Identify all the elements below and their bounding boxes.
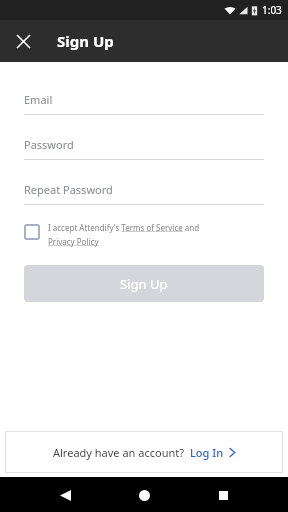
button[interactable]: Close <box>10 28 36 54</box>
staticText: Privacy Policy <box>48 236 99 247</box>
staticText: I accept Attendify's Terms of Service an… <box>48 222 200 233</box>
staticText: Sign Up <box>120 275 168 293</box>
other: Accept terms checkbox <box>24 224 40 240</box>
button[interactable]: Email <box>24 92 264 115</box>
staticText: Password <box>24 137 74 152</box>
button[interactable]: Password <box>24 137 264 160</box>
staticText: Email <box>24 92 53 107</box>
staticText: Log In <box>190 445 224 460</box>
staticText: Already have an account? <box>53 445 184 460</box>
button[interactable]: Already have an account? <box>5 431 283 473</box>
staticText: 1:03 <box>262 3 282 17</box>
button[interactable]: Home <box>132 483 156 507</box>
button[interactable]: Accept terms checkbox <box>24 222 264 247</box>
button[interactable]: Back <box>53 483 77 507</box>
button[interactable]: Sign Up <box>24 265 264 302</box>
button[interactable]: Repeat Password <box>24 182 264 205</box>
button[interactable]: Recent apps <box>211 483 235 507</box>
staticText: Repeat Password <box>24 182 113 197</box>
staticText: Sign Up <box>57 31 114 51</box>
